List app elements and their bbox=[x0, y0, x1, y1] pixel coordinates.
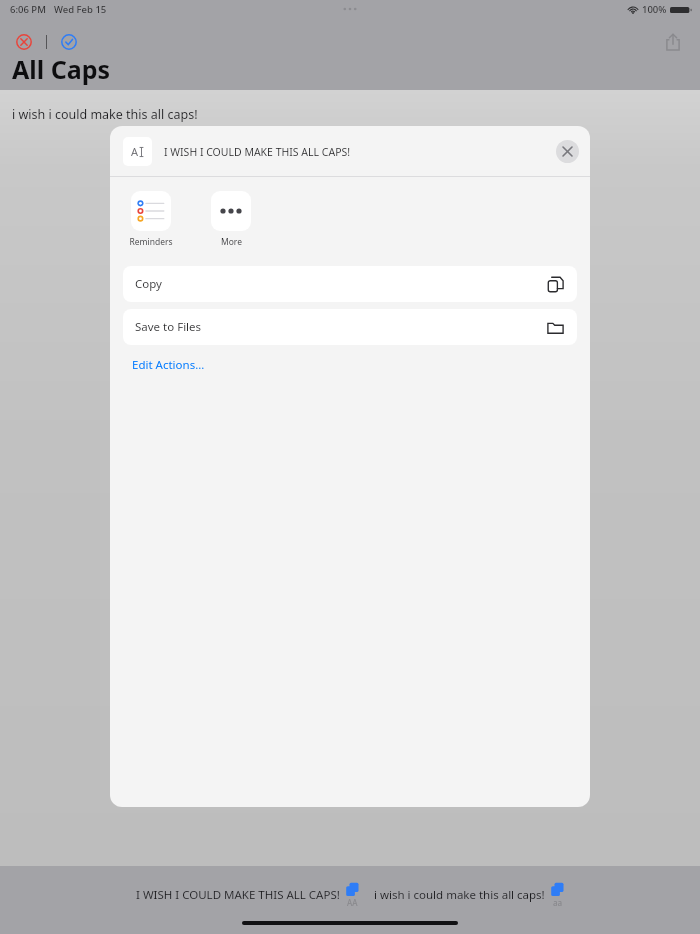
staticText: All Caps bbox=[12, 52, 111, 86]
staticText: Edit Actions... bbox=[132, 357, 205, 373]
staticText: More bbox=[221, 236, 242, 248]
staticText: Wed Feb 15 bbox=[54, 3, 107, 16]
staticText: Reminders bbox=[129, 236, 173, 248]
button[interactable]: Done bbox=[57, 30, 81, 54]
staticText: 6:06 PM bbox=[10, 3, 46, 16]
staticText: i wish i could make this all caps! bbox=[374, 887, 545, 903]
button[interactable]: Copy bbox=[123, 266, 577, 302]
button[interactable]: Close bbox=[556, 140, 579, 163]
staticText: I WISH I COULD MAKE THIS ALL CAPS! bbox=[164, 145, 351, 159]
staticText: i wish i could make this all caps! bbox=[12, 106, 198, 123]
staticText: aa bbox=[553, 897, 563, 908]
staticText: Copy bbox=[135, 276, 162, 292]
button[interactable]: i wish i could make this all caps! bbox=[374, 882, 565, 908]
staticText: AA bbox=[347, 897, 358, 908]
button[interactable]: Save to Files bbox=[123, 309, 577, 345]
button[interactable]: Cancel bbox=[12, 30, 36, 54]
staticText: A bbox=[131, 144, 139, 159]
button[interactable]: I WISH I COULD MAKE THIS ALL CAPS! bbox=[136, 882, 360, 908]
button[interactable]: Reminders bbox=[128, 191, 174, 248]
staticText: I WISH I COULD MAKE THIS ALL CAPS! bbox=[136, 887, 340, 903]
button[interactable]: Share bbox=[658, 27, 688, 57]
button[interactable]: Edit Actions... bbox=[132, 357, 205, 373]
staticText: 100% bbox=[642, 3, 667, 16]
button[interactable]: More bbox=[208, 191, 254, 248]
staticText: Save to Files bbox=[135, 319, 202, 335]
